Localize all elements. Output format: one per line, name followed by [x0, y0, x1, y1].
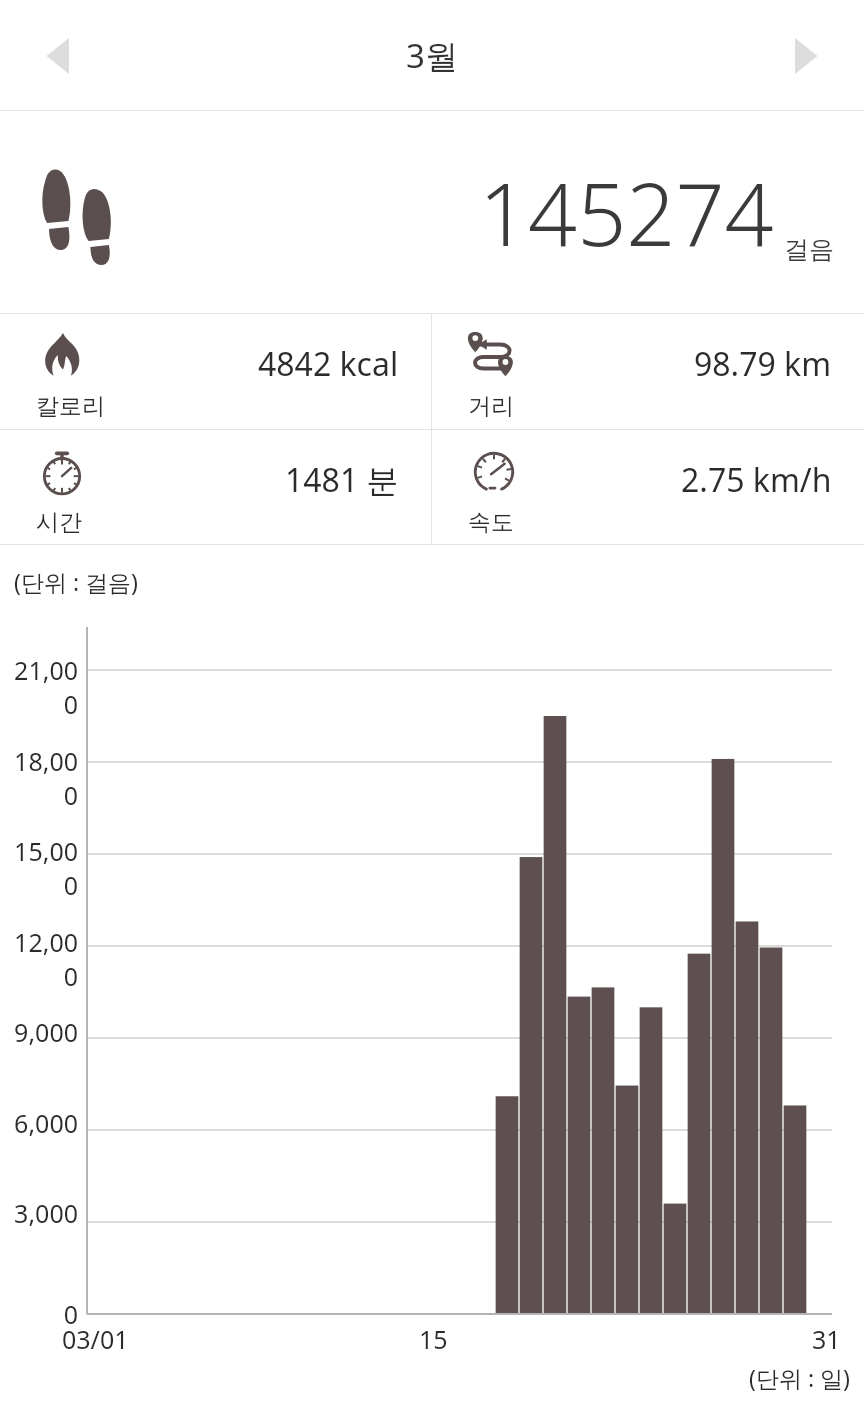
staticText: 31	[812, 1322, 841, 1356]
staticText: (단위 : 일)	[749, 1362, 850, 1393]
staticText: 9,000	[14, 1015, 78, 1049]
button[interactable]: 이전 달	[0, 0, 120, 111]
staticText: 03/01	[62, 1322, 129, 1356]
other: 거리	[468, 330, 520, 382]
other: 속도	[468, 446, 520, 498]
staticText: 145274	[479, 154, 774, 271]
staticText: (단위 : 걸음)	[14, 566, 138, 597]
staticText: 15,000	[4, 834, 78, 902]
staticText: 15	[419, 1322, 448, 1356]
staticText: 21,000	[4, 653, 78, 721]
staticText: 시간	[36, 508, 82, 537]
staticText: 6,000	[14, 1106, 78, 1140]
staticText: 칼로리	[36, 392, 105, 421]
button[interactable]: 다음 달	[744, 0, 864, 111]
staticText: 3월	[406, 33, 458, 78]
button[interactable]: 145274	[0, 111, 864, 314]
staticText: 4842 kcal	[258, 342, 399, 386]
staticText: 거리	[468, 392, 514, 421]
staticText: 18,000	[4, 744, 78, 812]
staticText: 1481 분	[285, 458, 399, 502]
staticText: 98.79 km	[694, 342, 832, 386]
staticText: 2.75 km/h	[681, 458, 832, 502]
staticText: 12,000	[4, 925, 78, 993]
staticText: 0	[63, 1297, 78, 1331]
staticText: 3,000	[14, 1196, 78, 1230]
button[interactable]: 거리	[432, 314, 864, 429]
button[interactable]: 칼로리	[0, 314, 431, 429]
button[interactable]: 속도	[432, 430, 864, 545]
button[interactable]: 시간	[0, 430, 431, 545]
staticText: 걸음	[784, 234, 834, 265]
staticText: 속도	[468, 508, 514, 537]
other: 칼로리	[36, 330, 88, 382]
other: 시간	[36, 446, 88, 498]
